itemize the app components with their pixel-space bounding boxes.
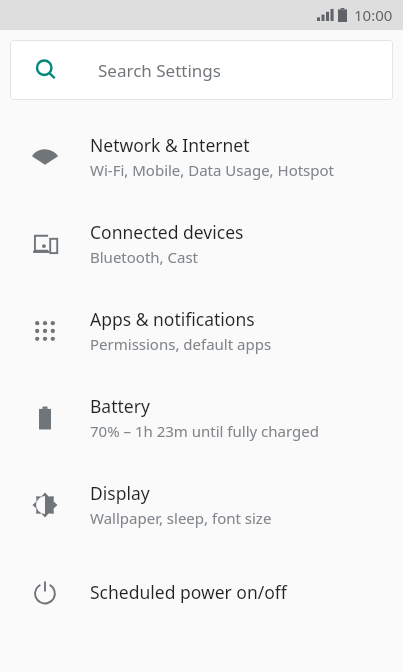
staticText: Battery: [90, 394, 150, 418]
button[interactable]: Apps & notifications: [0, 287, 403, 374]
staticText: 70% – 1h 23m until fully charged: [90, 421, 319, 441]
staticText: Wallpaper, sleep, font size: [90, 508, 272, 528]
staticText: Apps & notifications: [90, 307, 255, 331]
staticText: Bluetooth, Cast: [90, 247, 199, 267]
staticText: Scheduled power on/off: [90, 580, 287, 604]
staticText: Wi-Fi, Mobile, Data Usage, Hotspot: [90, 160, 335, 180]
staticText: Network & Internet: [90, 133, 250, 157]
button[interactable]: Scheduled power on/off: [0, 548, 403, 635]
staticText: 10:00: [354, 5, 393, 25]
button[interactable]: Battery: [0, 374, 403, 461]
staticText: Permissions, default apps: [90, 334, 272, 354]
button[interactable]: Display: [0, 461, 403, 548]
staticText: Search Settings: [98, 59, 221, 82]
staticText: Display: [90, 481, 150, 505]
button[interactable]: Search Settings: [10, 40, 393, 100]
button[interactable]: Connected devices: [0, 200, 403, 287]
staticText: Connected devices: [90, 220, 244, 244]
button[interactable]: Network & Internet: [0, 113, 403, 200]
